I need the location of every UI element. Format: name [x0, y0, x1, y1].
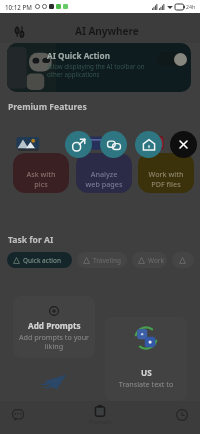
staticText: Quick action: [23, 256, 61, 265]
button[interactable]: Add Prompts: [13, 296, 95, 358]
staticText: 24h: [186, 3, 196, 10]
staticText: Allow displaying the AI toolbar on other…: [47, 62, 151, 78]
staticText: Work with PDF files: [138, 169, 194, 189]
button[interactable]: Prompts: [80, 404, 120, 425]
button[interactable]: Settings: [10, 22, 28, 40]
button[interactable]: Close: [170, 131, 197, 158]
staticText: AI Anywhere: [75, 24, 139, 38]
button[interactable]: US: [105, 317, 187, 401]
staticText: Add Prompts: [28, 320, 81, 331]
staticText: Add prompts to your liking: [15, 332, 93, 352]
button[interactable]: AI Quick Action: [7, 43, 191, 92]
staticText: US: [141, 367, 152, 378]
button[interactable]: Work: [132, 252, 167, 268]
button[interactable]: Home: [135, 131, 162, 158]
staticText: Ask with pics: [13, 169, 69, 189]
staticText: Premium Features: [8, 101, 87, 113]
staticText: Task for AI: [8, 234, 54, 246]
button[interactable]: Ask with pics: [13, 126, 69, 196]
button[interactable]: Screenshot: [65, 131, 92, 158]
button[interactable]: History: [170, 404, 194, 425]
staticText: 10:12 PM: [5, 3, 32, 11]
button[interactable]: Traveling: [77, 252, 127, 268]
button[interactable]: Chat bubbles: [100, 131, 127, 158]
staticText: AI Quick Action: [47, 50, 110, 61]
button[interactable]: Work with PDF files: [138, 126, 194, 196]
button[interactable]: Toggle AI Quick Action: [157, 52, 188, 66]
staticText: Traveling: [93, 256, 121, 265]
staticText: Analyze web pages: [76, 169, 132, 189]
button[interactable]: Analyze web pages: [76, 126, 132, 196]
button[interactable]: Quick action: [7, 252, 72, 268]
button[interactable]: [172, 252, 194, 268]
staticText: Translate text to: [105, 379, 187, 389]
button[interactable]: Chat: [6, 404, 30, 425]
staticText: Work: [148, 256, 165, 265]
